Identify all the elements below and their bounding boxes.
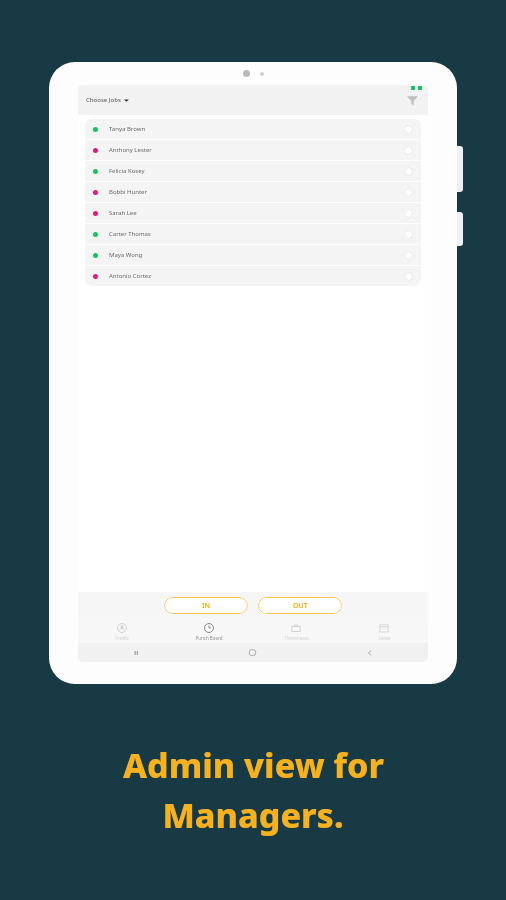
- button[interactable]: OUT: [258, 597, 342, 614]
- button[interactable]: Carter Thomas: [85, 224, 421, 244]
- staticText: Carter Thomas: [109, 230, 151, 238]
- button[interactable]: Antonio Cortez: [85, 266, 421, 286]
- button[interactable]: Choose Jobs: [86, 96, 129, 104]
- staticText: Bobbi Hunter: [109, 188, 147, 196]
- staticText: Timesheets: [284, 635, 309, 641]
- staticText: Tanya Brown: [109, 125, 146, 133]
- button[interactable]: Home: [194, 648, 311, 657]
- staticText: Profile: [115, 635, 129, 641]
- staticText: Choose Jobs: [86, 96, 121, 104]
- staticText: IN: [202, 601, 211, 611]
- staticText: Felicia Kosey: [109, 167, 145, 175]
- staticText: Maya Wong: [109, 251, 143, 259]
- staticText: OUT: [293, 601, 308, 611]
- button[interactable]: Tanya Brown: [85, 119, 421, 139]
- staticText: Antonio Cortez: [109, 272, 151, 280]
- staticText: Admin view for: [123, 742, 384, 788]
- button[interactable]: Bobbi Hunter: [85, 182, 421, 202]
- button[interactable]: Timesheets: [252, 620, 340, 641]
- button[interactable]: Back: [311, 649, 428, 657]
- button[interactable]: IN: [164, 597, 248, 614]
- staticText: Managers.: [162, 792, 344, 838]
- button[interactable]: Maya Wong: [85, 245, 421, 265]
- button[interactable]: Punch Board: [165, 620, 252, 641]
- button[interactable]: Profile: [78, 620, 165, 641]
- button[interactable]: Anthony Lester: [85, 140, 421, 160]
- staticText: Leave: [378, 635, 391, 641]
- button[interactable]: Recents: [78, 649, 194, 657]
- button[interactable]: Sarah Lee: [85, 203, 421, 223]
- staticText: Sarah Lee: [109, 209, 137, 217]
- button[interactable]: Leave: [340, 620, 428, 641]
- button[interactable]: Filter: [404, 92, 420, 108]
- staticText: Anthony Lester: [109, 146, 152, 154]
- button[interactable]: Felicia Kosey: [85, 161, 421, 181]
- staticText: Punch Board: [195, 635, 223, 641]
